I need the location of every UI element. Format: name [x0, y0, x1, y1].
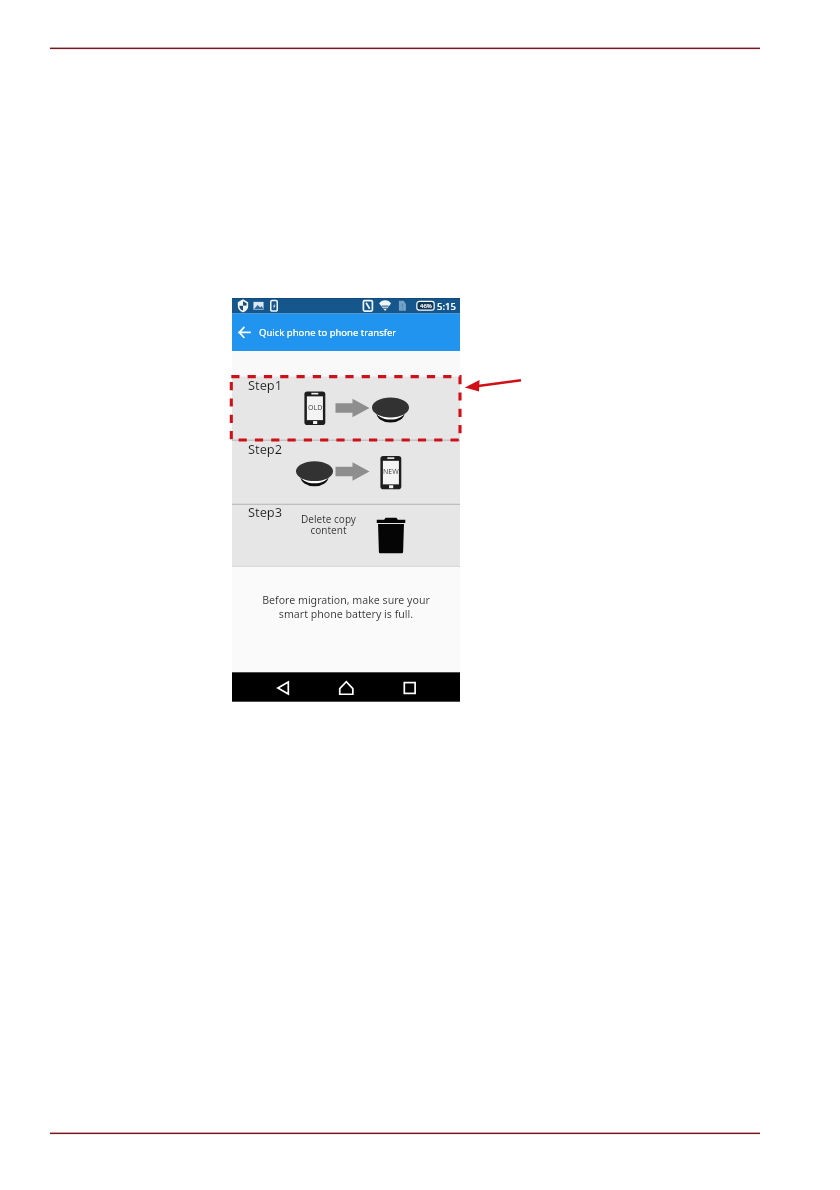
button[interactable]: Back [236, 314, 256, 351]
button[interactable]: Quick phone to phone transfer [232, 314, 460, 351]
staticText: Before migration, make sure your smart p… [262, 593, 430, 621]
staticText: 5:15 [437, 300, 456, 311]
button[interactable]: Back [270, 672, 298, 701]
staticText: Step2 [248, 440, 283, 457]
staticText: Delete copy content [301, 512, 356, 537]
staticText: Step1 [248, 376, 283, 393]
button[interactable] [232, 377, 460, 441]
staticText: OLD [308, 403, 323, 413]
button[interactable] [232, 504, 460, 566]
button[interactable]: Recent apps [396, 672, 424, 701]
staticText: 46% [420, 302, 432, 310]
button[interactable]: Home [332, 672, 360, 701]
button[interactable] [232, 440, 460, 504]
staticText: Step3 [248, 503, 283, 520]
staticText: NEW [383, 467, 399, 477]
staticText: Quick phone to phone transfer [259, 326, 397, 339]
